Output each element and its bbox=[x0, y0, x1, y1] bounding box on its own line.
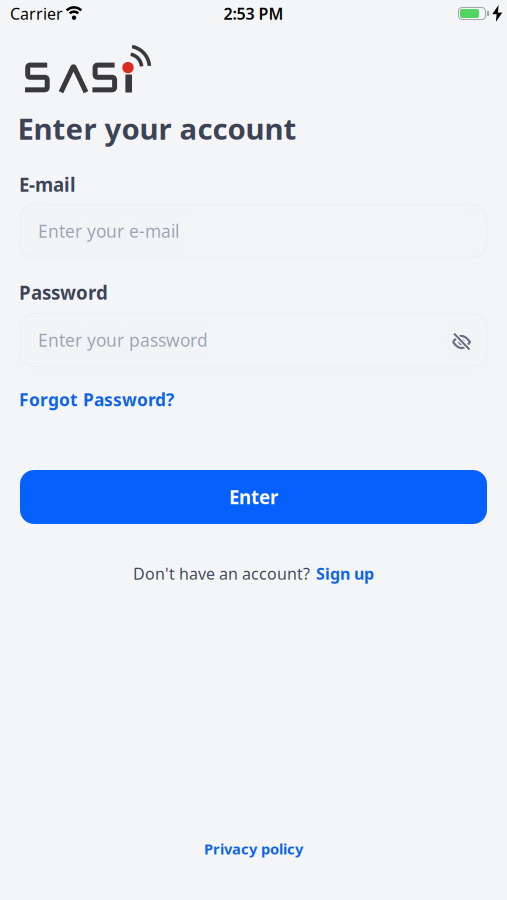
staticText: Enter your password bbox=[38, 328, 208, 351]
staticText: Password bbox=[19, 280, 108, 305]
staticText: E-mail bbox=[19, 172, 76, 197]
staticText: 2:53 PM bbox=[223, 3, 283, 24]
staticText: Forgot Password? bbox=[19, 388, 174, 411]
staticText: Carrier bbox=[10, 3, 63, 24]
button[interactable]: Privacy policy bbox=[204, 839, 303, 858]
button[interactable]: Enter bbox=[20, 470, 487, 524]
staticText: Privacy policy bbox=[204, 839, 303, 858]
staticText: Enter your account bbox=[17, 109, 296, 148]
staticText: Sign up bbox=[316, 563, 374, 584]
staticText: Enter your e-mail bbox=[38, 219, 179, 242]
staticText: Don't have an account? bbox=[133, 563, 310, 584]
button[interactable]: Enter your e-mail bbox=[20, 204, 487, 258]
staticText: Enter bbox=[229, 485, 278, 509]
button[interactable]: Enter your password bbox=[20, 313, 487, 367]
button[interactable]: Sign up bbox=[316, 563, 374, 584]
button[interactable]: Forgot Password? bbox=[19, 388, 174, 411]
